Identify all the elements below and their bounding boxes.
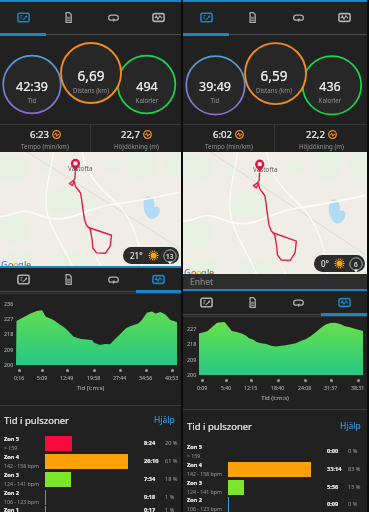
button[interactable]: Details [46, 268, 91, 290]
button[interactable]: Zon 1 [0, 506, 181, 512]
button[interactable]: Hjälp [338, 418, 363, 434]
button[interactable]: Map [183, 152, 367, 274]
staticText: 0:17 [144, 506, 156, 512]
button[interactable]: Laps [275, 2, 321, 33]
staticText: 22,2 [306, 128, 325, 141]
button[interactable]: Distans (km) [229, 67, 319, 94]
staticText: 227 [4, 315, 14, 322]
button[interactable]: Zon 5 [0, 434, 181, 452]
staticText: 227 [187, 325, 197, 332]
staticText: 1 % [165, 493, 175, 501]
staticText: G [184, 266, 191, 274]
button[interactable]: Summary [0, 2, 46, 33]
staticText: 1 % [165, 506, 175, 512]
button[interactable]: Hjälp [152, 412, 177, 428]
staticText: 436 [285, 78, 369, 95]
staticText: > 159 [187, 452, 201, 459]
button[interactable]: Charts [136, 268, 181, 290]
staticText: Tid i pulszoner [4, 414, 152, 427]
button[interactable]: Charts [321, 2, 367, 33]
staticText: 61 % [165, 457, 178, 465]
button[interactable]: Zon 2 [0, 488, 181, 506]
staticText: 15 % [348, 483, 361, 491]
button[interactable]: Charts [136, 2, 181, 33]
button[interactable]: Laps [91, 268, 136, 290]
staticText: o [191, 266, 196, 274]
button[interactable]: Enhet [183, 274, 367, 289]
staticText: Tid [170, 96, 260, 104]
staticText: Tid (t:m:s) [0, 384, 181, 392]
staticText: o [8, 258, 13, 266]
staticText: Hjälp [154, 414, 175, 426]
staticText: 12:49 [60, 374, 74, 381]
button[interactable]: Zon 4 [0, 452, 181, 470]
staticText: e [209, 266, 214, 274]
staticText: 0 % [348, 447, 358, 455]
staticText: 27:44 [113, 374, 127, 381]
button[interactable]: Charts [321, 291, 367, 313]
staticText: 34:56 [139, 374, 153, 381]
staticText: Zon 4 [4, 453, 20, 461]
staticText: 39:49 [170, 78, 260, 95]
button[interactable]: Tid [0, 78, 77, 104]
button[interactable]: 22,2 [275, 125, 367, 152]
button[interactable]: Distans (km) [46, 67, 136, 94]
staticText: 22,7 [121, 128, 140, 141]
staticText: o [13, 258, 18, 266]
staticText: Distans (km) [46, 86, 136, 94]
staticText: 20 % [165, 439, 178, 447]
button[interactable]: Tid [170, 78, 260, 104]
button[interactable]: Details [46, 2, 91, 33]
button[interactable]: 22,7 [91, 125, 181, 152]
button[interactable]: Laps [91, 2, 136, 33]
staticText: 40:53 [165, 374, 179, 381]
staticText: 142 - 158 bpm [4, 462, 39, 469]
staticText: 6,59 [229, 67, 319, 85]
button[interactable]: Details [229, 2, 275, 33]
staticText: 494 [102, 78, 192, 95]
staticText: Kalorier [285, 96, 369, 104]
button[interactable]: Zon 4 [183, 460, 367, 478]
staticText: 0:00 [327, 447, 339, 455]
staticText: 0:09 [197, 384, 208, 391]
button[interactable]: Laps [275, 291, 321, 313]
button[interactable]: Zon 3 [183, 478, 367, 496]
staticText: Distans (km) [229, 86, 319, 94]
button[interactable]: Map [0, 152, 181, 266]
button[interactable]: Summary [0, 268, 46, 290]
button[interactable]: Details [229, 291, 275, 313]
staticText: 218 [187, 340, 197, 347]
button[interactable]: 6:02 [183, 125, 274, 152]
staticText: 18 % [165, 475, 178, 483]
staticText: Zon 3 [4, 471, 20, 479]
staticText: Kalorier [102, 96, 192, 104]
staticText: Tid (t:m:s) [183, 394, 367, 402]
staticText: 18:40 [271, 384, 285, 391]
staticText: > 159 [4, 444, 18, 451]
staticText: Zon 1 [4, 506, 20, 512]
button[interactable]: 6:23 [0, 125, 90, 152]
button[interactable]: Kalorier [102, 78, 192, 104]
staticText: 19:58 [87, 374, 101, 381]
staticText: 26:10 [144, 457, 159, 465]
staticText: 236 [4, 300, 14, 307]
button[interactable]: 21° [123, 247, 179, 264]
staticText: e [26, 258, 31, 266]
button[interactable]: Zon 2 [183, 496, 367, 512]
staticText: Västofta [68, 164, 93, 172]
button[interactable]: Zon 5 [183, 442, 367, 460]
staticText: 106 - 123 bpm [4, 498, 39, 505]
button[interactable]: Summary [183, 291, 229, 313]
staticText: Höjdökning (m) [114, 142, 159, 150]
staticText: 5:56 [327, 483, 339, 491]
staticText: 38:31 [351, 384, 365, 391]
staticText: 124 - 141 bpm [4, 480, 39, 487]
button[interactable]: Summary [183, 2, 229, 33]
staticText: 8:24 [144, 439, 156, 447]
staticText: 0 % [348, 500, 358, 508]
button[interactable]: Kalorier [285, 78, 369, 104]
button[interactable]: Zon 3 [0, 470, 181, 488]
button[interactable]: 0° [314, 255, 365, 272]
staticText: 209 [187, 356, 197, 363]
staticText: 5:40 [221, 384, 232, 391]
